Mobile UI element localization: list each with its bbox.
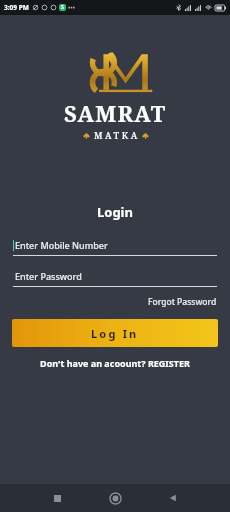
button[interactable]: Enter Password: [13, 270, 217, 287]
staticText: Forgot Password: [148, 296, 217, 308]
button[interactable]: Home: [104, 487, 126, 509]
button[interactable]: Enter Mobile Number: [13, 239, 217, 256]
staticText: ⋯: [68, 4, 75, 12]
button[interactable]: Recent apps: [46, 487, 68, 509]
staticText: Log In: [91, 326, 139, 341]
staticText: Enter Mobile Number: [15, 239, 108, 251]
button[interactable]: Don't have an acoount? REGISTER: [0, 357, 230, 369]
staticText: MATKA: [94, 129, 140, 141]
staticText: SAMRAT: [64, 98, 167, 128]
staticText: S: [61, 4, 64, 11]
button[interactable]: Log In: [12, 319, 218, 347]
button[interactable]: Back: [162, 487, 184, 509]
staticText: Enter Password: [15, 270, 82, 282]
staticText: Login: [97, 203, 133, 221]
staticText: 3:09 PM: [4, 3, 29, 12]
staticText: Don't have an acoount? REGISTER: [40, 357, 190, 369]
button[interactable]: Forgot Password: [135, 293, 230, 311]
